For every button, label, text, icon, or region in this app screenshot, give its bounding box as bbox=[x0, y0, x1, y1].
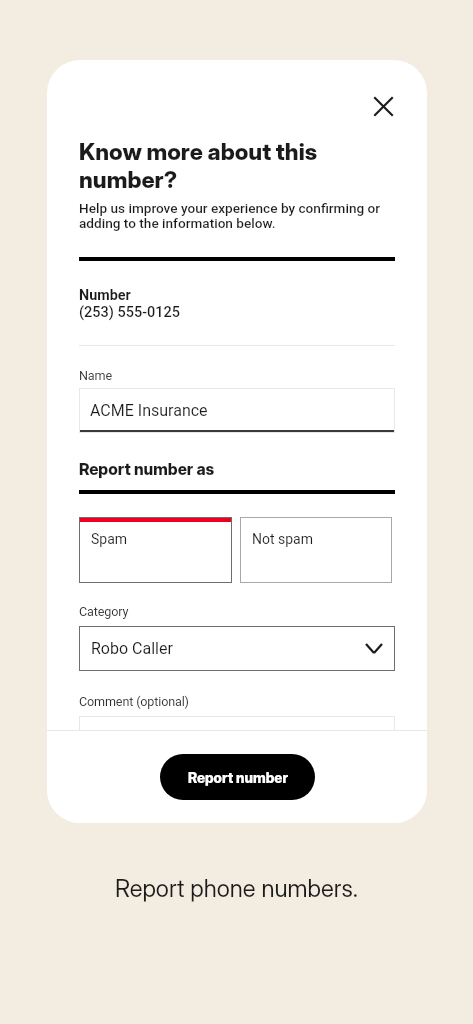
staticText: Report phone numbers. bbox=[0, 874, 473, 903]
staticText: Category bbox=[79, 604, 129, 619]
button[interactable]: ACME Insurance bbox=[79, 388, 395, 433]
button[interactable]: Report number bbox=[160, 754, 315, 800]
staticText: Spam bbox=[91, 531, 128, 547]
staticText: ACME Insurance bbox=[90, 401, 208, 420]
button[interactable]: Close bbox=[366, 89, 400, 123]
staticText: (253) 555-0125 bbox=[79, 304, 180, 321]
staticText: Comment (optional) bbox=[79, 694, 189, 709]
staticText: Robo Caller bbox=[91, 639, 173, 658]
button[interactable]: Not spam bbox=[240, 517, 392, 583]
button[interactable]: Spam bbox=[79, 517, 232, 583]
staticText: Report number bbox=[188, 769, 288, 786]
button[interactable]: Category Robo Caller bbox=[79, 626, 395, 671]
staticText: Not spam bbox=[252, 531, 314, 547]
staticText: Name bbox=[79, 368, 112, 383]
staticText: Number bbox=[79, 287, 131, 304]
staticText: Know more about this number? bbox=[79, 138, 324, 193]
staticText: Help us improve your experience by confi… bbox=[79, 200, 395, 231]
staticText: Report number as bbox=[79, 459, 215, 478]
